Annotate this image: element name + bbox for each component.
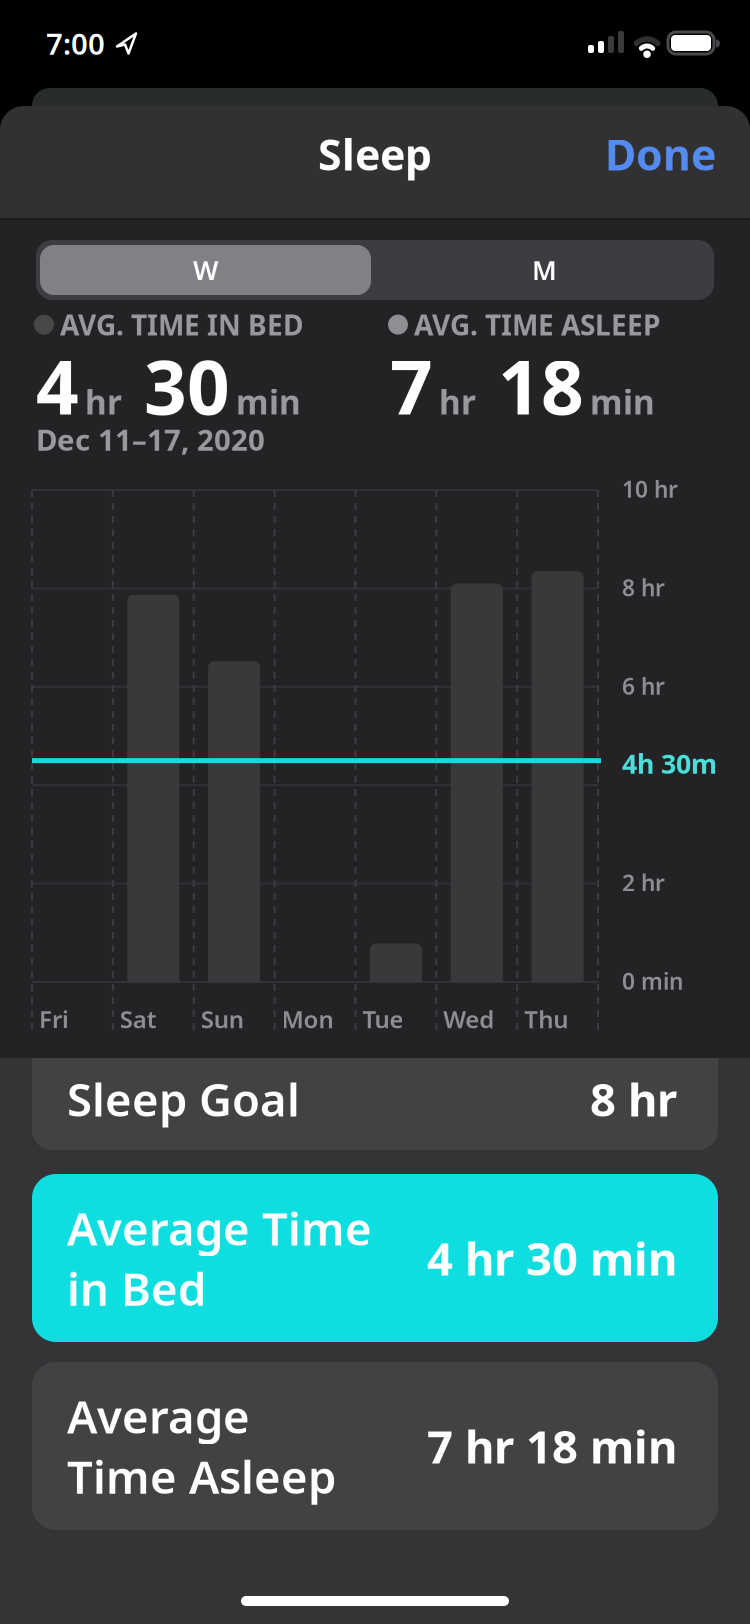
staticText: 2 hr — [622, 868, 665, 898]
button[interactable]: Sleep Goal — [32, 1058, 718, 1150]
staticText: Tue — [362, 1003, 403, 1035]
staticText: Sat — [120, 1003, 157, 1035]
staticText: 30 — [144, 336, 230, 435]
staticText: hr — [439, 379, 476, 424]
staticText: Thu — [524, 1003, 568, 1035]
staticText: 7 — [390, 336, 433, 435]
staticText: Done — [605, 126, 716, 182]
button[interactable]: M — [379, 245, 710, 295]
staticText: 6 hr — [622, 671, 665, 701]
staticText: in Bed — [67, 1258, 206, 1318]
staticText: Average — [67, 1386, 250, 1446]
staticText: Time Asleep — [67, 1446, 336, 1506]
staticText: M — [532, 252, 557, 288]
staticText: hr — [85, 379, 122, 424]
staticText: W — [193, 252, 218, 288]
staticText: 10 hr — [622, 474, 678, 504]
staticText: min — [236, 379, 301, 424]
staticText: Dec 11–17, 2020 — [36, 420, 265, 459]
staticText: 4 — [36, 336, 79, 435]
staticText: Wed — [443, 1003, 494, 1035]
staticText: 0 min — [622, 966, 683, 996]
staticText: 18 — [498, 336, 584, 435]
staticText: min — [590, 379, 655, 424]
staticText: Sleep — [318, 126, 432, 182]
staticText: Sleep Goal — [67, 1069, 300, 1129]
staticText: 8 hr — [590, 1069, 677, 1129]
staticText: Fri — [39, 1003, 69, 1035]
staticText: Average Time — [67, 1198, 372, 1258]
button[interactable]: Average Time — [32, 1174, 718, 1342]
staticText: AVG. TIME IN BED — [60, 306, 303, 343]
button[interactable]: Done — [605, 126, 716, 182]
staticText: 7 hr 18 min — [427, 1416, 677, 1476]
staticText: AVG. TIME ASLEEP — [414, 306, 660, 343]
button[interactable]: Average — [32, 1362, 718, 1530]
staticText: 4h 30m — [622, 746, 717, 781]
staticText: 7:00 — [46, 24, 105, 63]
staticText: 8 hr — [622, 572, 665, 602]
button[interactable]: W — [40, 245, 371, 295]
staticText: Sun — [201, 1003, 244, 1035]
staticText: Mon — [282, 1003, 334, 1035]
staticText: 4 hr 30 min — [427, 1228, 677, 1288]
